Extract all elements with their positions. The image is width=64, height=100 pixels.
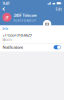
button[interactable]: Back [0, 6, 7, 12]
button[interactable]: Edit [54, 6, 64, 12]
staticText: Notifications [2, 45, 23, 50]
button[interactable]: Notifications [0, 44, 64, 51]
button[interactable]: Change photo [43, 20, 51, 28]
staticText: +1 (555) 018-4429 [2, 32, 31, 38]
button[interactable]: +1 (555) 018-4429 [0, 31, 31, 43]
staticText: Info [2, 27, 8, 31]
staticText: Edit [56, 6, 62, 12]
staticText: JT [5, 15, 8, 20]
staticText: Mobile [2, 38, 12, 42]
staticText: Business account [13, 19, 36, 22]
staticText: 9:41 [3, 0, 10, 6]
staticText: 24SF Telecom [13, 12, 37, 18]
